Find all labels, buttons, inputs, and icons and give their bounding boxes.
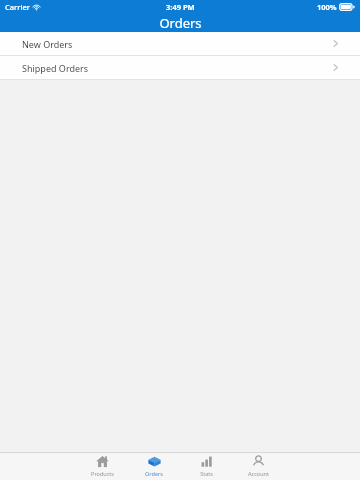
staticText: 3:49 PM <box>166 2 195 12</box>
button[interactable]: Stats <box>180 453 232 480</box>
staticText: New Orders <box>22 38 73 50</box>
button[interactable]: Products <box>76 453 128 480</box>
staticText: Stats <box>200 470 213 477</box>
staticText: Products <box>91 470 114 477</box>
staticText: Orders <box>145 470 163 477</box>
other: Orders <box>148 455 161 468</box>
other: Products <box>96 455 109 468</box>
button[interactable]: New Orders <box>0 32 360 55</box>
button[interactable]: Orders <box>128 453 180 480</box>
staticText: Account <box>248 470 269 477</box>
other: Account <box>252 455 265 468</box>
other: Stats <box>200 455 213 468</box>
staticText: Orders <box>159 14 202 32</box>
staticText: Shipped Orders <box>22 62 89 74</box>
staticText: 100% <box>317 2 337 12</box>
button[interactable]: Account <box>232 453 284 480</box>
button[interactable]: Shipped Orders <box>0 56 360 79</box>
staticText: Carrier <box>5 2 30 12</box>
